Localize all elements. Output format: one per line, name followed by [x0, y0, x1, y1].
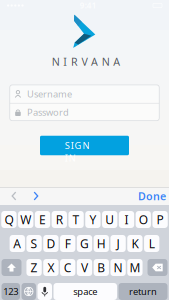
staticText: E: [39, 211, 46, 227]
staticText: 123: [3, 285, 18, 298]
button[interactable]: F: [60, 235, 75, 252]
staticText: Y: [89, 211, 96, 227]
button[interactable]: W: [18, 211, 33, 228]
button[interactable]: B: [94, 259, 109, 276]
button[interactable]: C: [60, 259, 75, 276]
button[interactable]: O: [136, 211, 151, 228]
staticText: O: [139, 211, 148, 227]
staticText: U: [105, 211, 114, 227]
staticText: Password: [27, 106, 69, 118]
staticText: H: [97, 235, 106, 251]
staticText: L: [149, 235, 155, 251]
button[interactable]: Done: [132, 187, 166, 205]
button[interactable]: Dictation: [37, 283, 52, 300]
staticText: T: [73, 211, 80, 227]
staticText: G: [80, 235, 89, 251]
button[interactable]: E: [35, 211, 50, 228]
staticText: P: [157, 211, 164, 227]
button[interactable]: Q: [1, 211, 16, 228]
staticText: F: [65, 235, 71, 251]
staticText: SIGN IN: [65, 139, 104, 152]
button[interactable]: R: [52, 211, 67, 228]
staticText: S: [31, 235, 38, 251]
button[interactable]: Next keyboard: [21, 283, 36, 300]
staticText: Z: [31, 259, 38, 275]
button[interactable]: K: [127, 235, 142, 252]
button[interactable]: Y: [85, 211, 100, 228]
button[interactable]: SIGN IN: [40, 136, 129, 155]
button[interactable]: N: [110, 259, 126, 276]
staticText: K: [131, 235, 138, 251]
staticText: return: [129, 285, 157, 298]
staticText: NIRVANA: [52, 54, 120, 69]
staticText: V: [81, 259, 88, 275]
staticText: W: [20, 211, 31, 227]
staticText: A: [13, 235, 21, 251]
button[interactable]: A: [10, 235, 25, 252]
staticText: Username: [27, 88, 72, 100]
staticText: C: [64, 259, 72, 275]
staticText: R: [56, 211, 63, 227]
button[interactable]: P: [152, 211, 168, 228]
staticText: N: [114, 259, 123, 275]
button[interactable]: X: [43, 259, 58, 276]
button[interactable]: Previous field: [3, 187, 25, 205]
staticText: D: [46, 235, 55, 251]
button[interactable]: Next field: [25, 187, 47, 205]
button[interactable]: space: [53, 283, 117, 300]
staticText: M: [129, 259, 140, 275]
button[interactable]: S: [26, 235, 42, 252]
button[interactable]: T: [68, 211, 84, 228]
button[interactable]: Z: [26, 259, 42, 276]
button[interactable]: G: [77, 235, 92, 252]
button[interactable]: V: [77, 259, 92, 276]
button[interactable]: H: [94, 235, 109, 252]
button[interactable]: M: [127, 259, 142, 276]
button[interactable]: U: [102, 211, 117, 228]
staticText: space: [73, 285, 97, 298]
staticText: Q: [4, 211, 13, 227]
staticText: J: [117, 235, 120, 251]
button[interactable]: return: [118, 283, 167, 300]
button[interactable]: J: [110, 235, 126, 252]
button[interactable]: Numbers: [1, 283, 20, 300]
staticText: I: [124, 211, 128, 227]
button[interactable]: Delete: [147, 259, 167, 276]
button[interactable]: I: [119, 211, 134, 228]
staticText: X: [47, 259, 54, 275]
staticText: Done: [138, 189, 166, 203]
button[interactable]: D: [43, 235, 59, 252]
staticText: B: [97, 259, 105, 275]
button[interactable]: Shift: [1, 259, 21, 276]
button[interactable]: L: [144, 235, 159, 252]
